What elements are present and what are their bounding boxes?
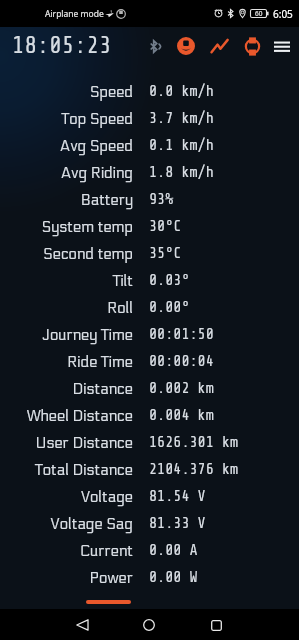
staticText: Power [89,569,133,587]
button[interactable]: Battery [0,186,299,213]
staticText: 6:05 [273,7,293,21]
staticText: Wheel Distance [26,407,133,425]
button[interactable]: Menu [269,33,295,59]
button[interactable]: Wheel [172,32,200,60]
button[interactable]: System temp [0,213,299,240]
staticText: Avg Riding [60,164,133,182]
staticText: 0.002 km [149,380,214,397]
staticText: 81.33 V [149,515,206,532]
button[interactable]: Distance [0,375,299,402]
staticText: Second temp [43,245,133,263]
button[interactable]: Home [135,611,163,639]
button[interactable]: Ride Time [0,348,299,375]
staticText: 0.004 km [149,407,214,424]
staticText: Total Distance [34,461,133,479]
button[interactable]: Chart [205,32,233,60]
staticText: 0.0 km/h [149,83,214,100]
button[interactable]: Avg Speed [0,132,299,159]
staticText: 0.00° [149,299,190,316]
staticText: 30°C [149,218,182,235]
staticText: 93% [149,191,174,208]
button[interactable]: Avg Riding [0,159,299,186]
staticText: 00:00:04 [149,353,214,370]
staticText: User Distance [35,434,133,452]
button[interactable]: Watch [238,32,266,60]
button[interactable]: Voltage [0,483,299,510]
button[interactable]: User Distance [0,429,299,456]
staticText: 35°C [149,245,182,262]
staticText: Speed [89,83,133,101]
staticText: 1626.301 km [149,434,239,451]
staticText: 60 [255,9,263,18]
button[interactable]: Bluetooth [142,33,168,59]
button[interactable]: Power [0,564,299,591]
staticText: Tilt [112,272,133,290]
staticText: System temp [41,218,133,236]
button[interactable]: Speed [0,78,299,105]
button[interactable]: Top Speed [0,105,299,132]
staticText: 0.1 km/h [149,137,214,154]
button[interactable]: Voltage Sag [0,510,299,537]
staticText: 81.54 V [149,488,206,505]
staticText: Current [80,542,133,560]
staticText: 3.7 km/h [149,110,214,127]
staticText: Roll [107,299,133,317]
button[interactable]: Roll [0,294,299,321]
staticText: Voltage [80,488,133,506]
button[interactable]: Wheel Distance [0,402,299,429]
staticText: 0.00 W [149,569,198,586]
staticText: Ride Time [67,353,133,371]
staticText: 0.00 A [149,542,198,559]
staticText: 1.8 km/h [149,164,214,181]
button[interactable]: Second temp [0,240,299,267]
staticText: Airplane mode [45,8,104,20]
staticText: Top Speed [61,110,133,128]
button[interactable]: Tilt [0,267,299,294]
button[interactable]: Recents [202,611,230,639]
staticText: Journey Time [42,326,133,344]
staticText: 18:05:23 [12,33,112,59]
button[interactable]: Back [68,611,96,639]
staticText: Battery [80,191,133,209]
button[interactable]: Current [0,537,299,564]
button[interactable]: Total Distance [0,456,299,483]
staticText: 0.03° [149,272,190,289]
staticText: Avg Speed [59,137,133,155]
staticText: 00:01:50 [149,326,214,343]
staticText: Voltage Sag [50,515,133,533]
staticText: 2104.376 km [149,461,239,478]
button[interactable]: Journey Time [0,321,299,348]
staticText: Distance [72,380,133,398]
